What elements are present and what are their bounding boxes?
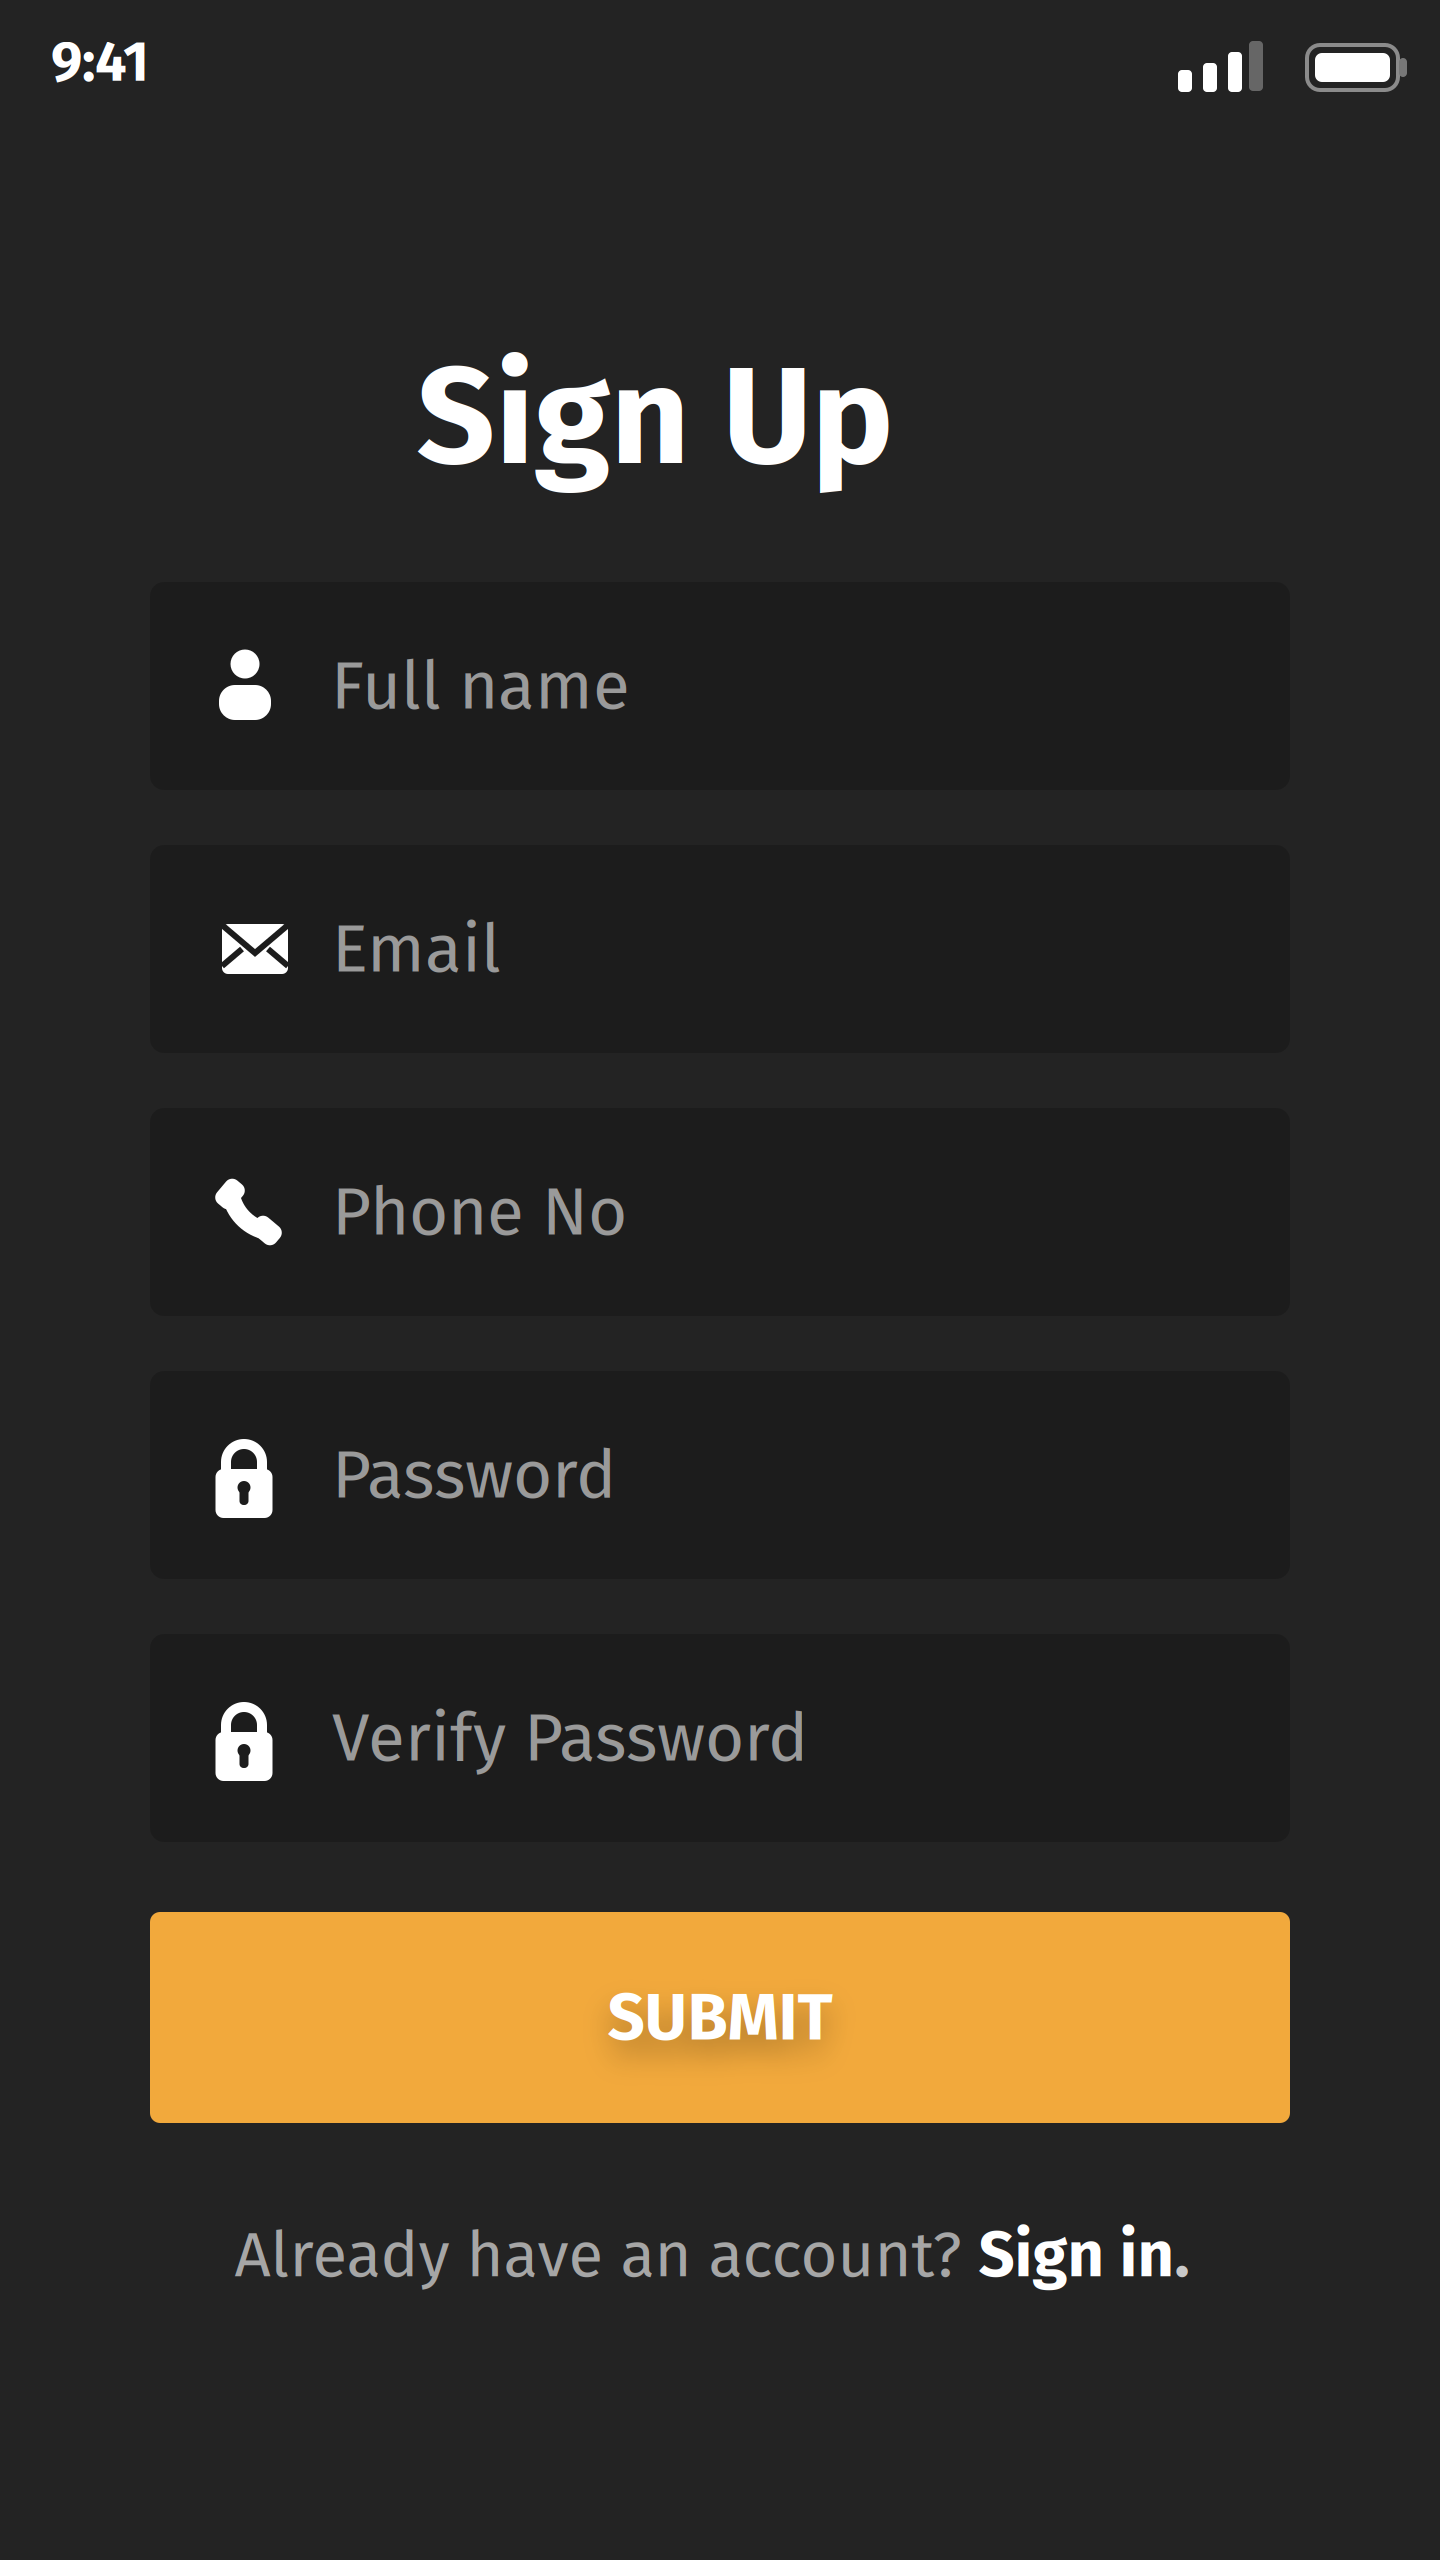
button[interactable]: Already have an account? xyxy=(234,2217,1189,2293)
button[interactable]: Full name xyxy=(150,582,1290,790)
button[interactable]: Verify Password xyxy=(150,1634,1290,1842)
staticText: Password xyxy=(332,1435,616,1515)
staticText: Already have an account? xyxy=(234,2217,978,2293)
staticText: 9:41 xyxy=(51,28,149,96)
staticText: Verify Password xyxy=(332,1698,808,1778)
staticText: Full name xyxy=(331,646,630,726)
staticText: Phone No xyxy=(332,1172,627,1252)
button[interactable]: Password xyxy=(150,1371,1290,1579)
button[interactable]: Phone No xyxy=(150,1108,1290,1316)
staticText: SUBMIT xyxy=(607,1978,832,2057)
staticText: Sign Up xyxy=(416,335,893,499)
staticText: Email xyxy=(332,909,501,989)
staticText: . xyxy=(1174,2217,1189,2293)
button[interactable]: Email xyxy=(150,845,1290,1053)
button[interactable]: SUBMIT xyxy=(150,1912,1290,2123)
staticText: Sign in xyxy=(978,2217,1174,2293)
